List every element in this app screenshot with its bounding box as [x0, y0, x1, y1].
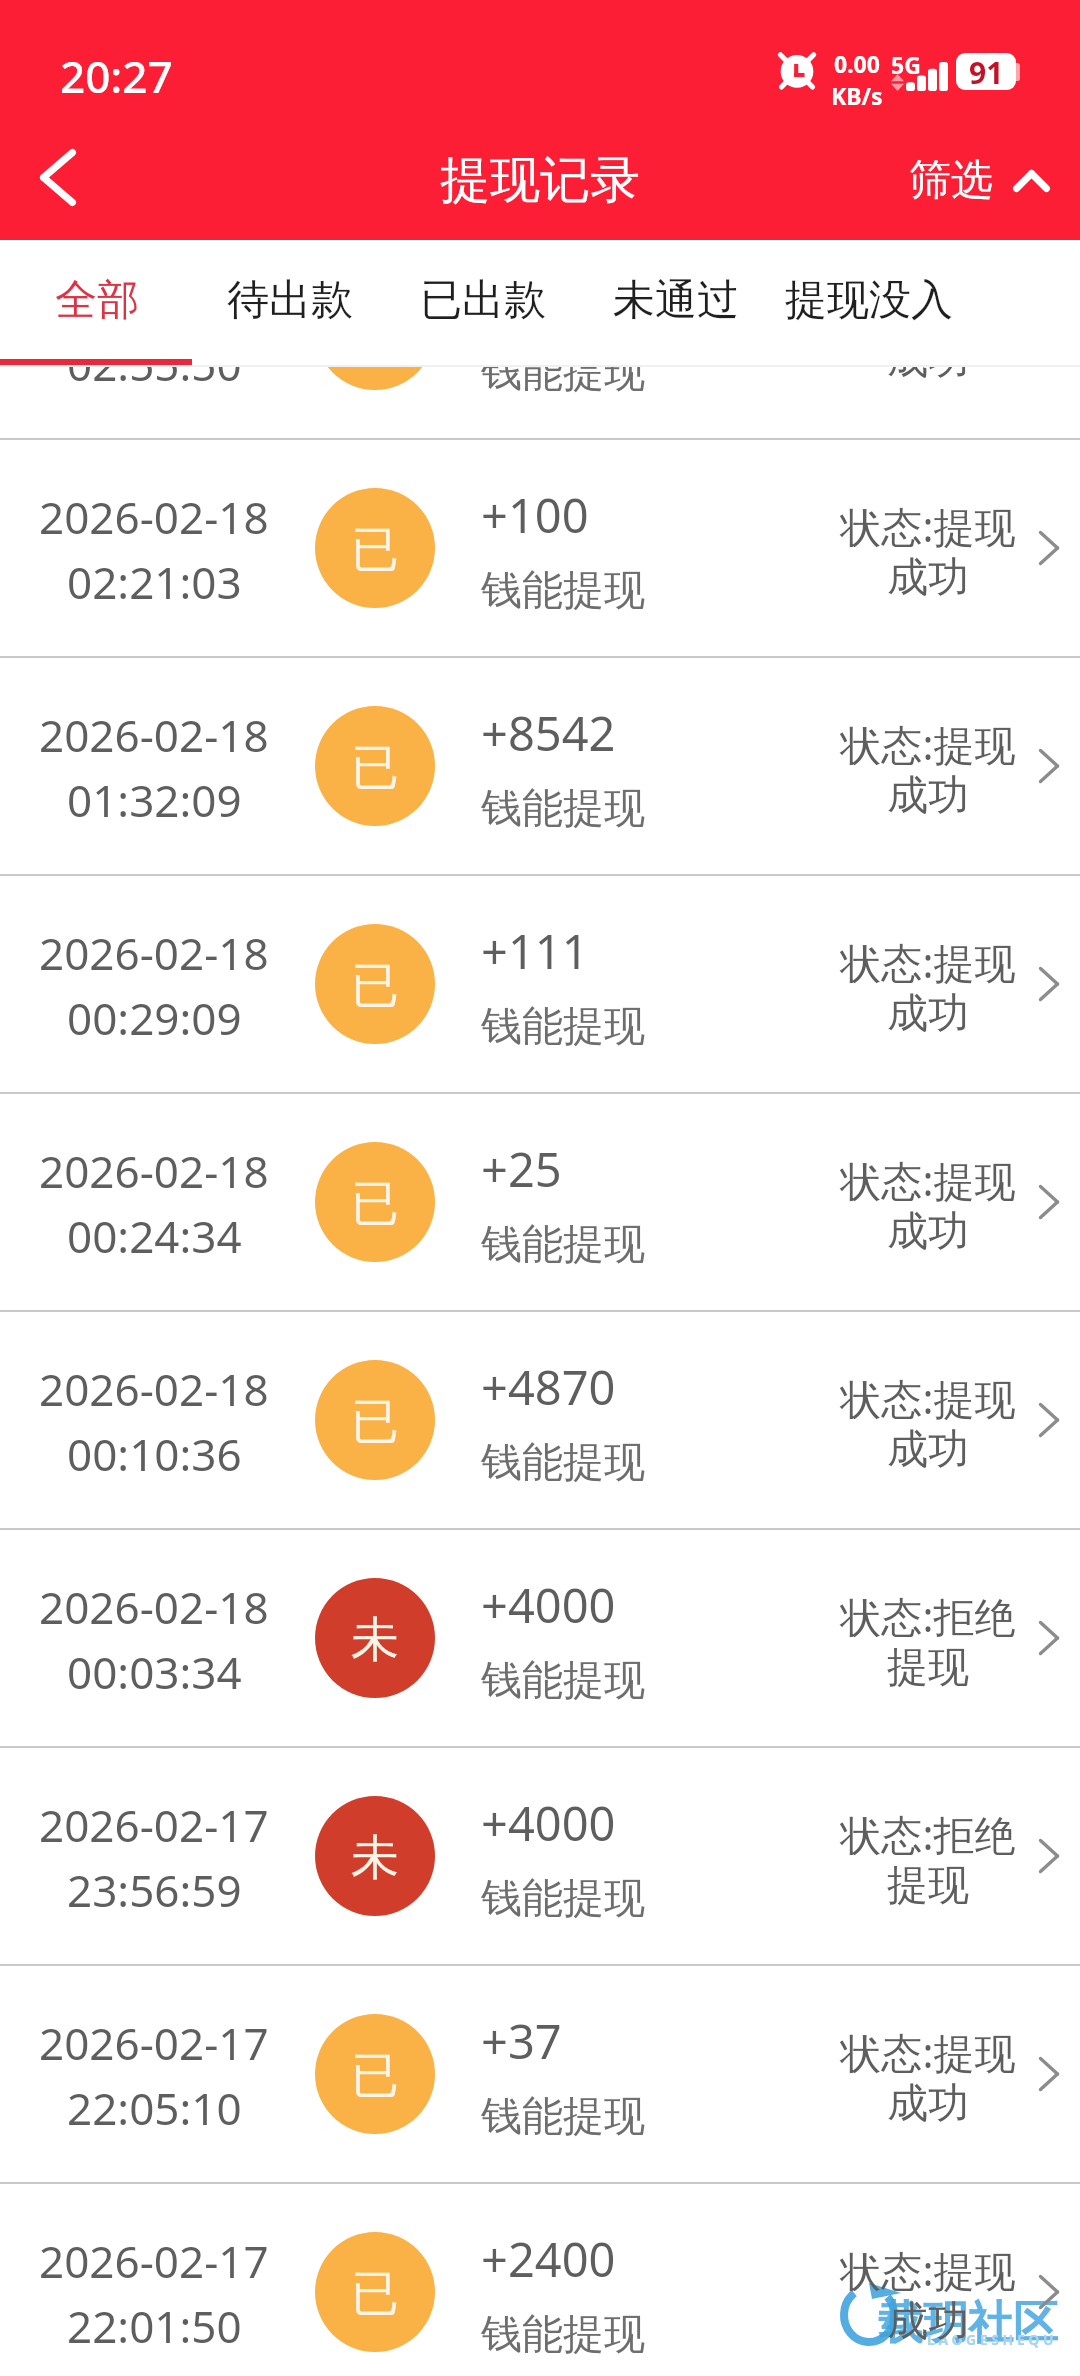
staticText: 钱能提现 — [481, 347, 645, 399]
button[interactable]: 提现没入 — [772, 240, 965, 367]
staticText: 状态:提现成功 — [840, 1370, 1016, 1475]
staticText: 0.00 — [834, 48, 880, 79]
staticText: 状态:提现成功 — [840, 498, 1016, 603]
staticText: 2026-02-17 — [39, 2013, 269, 2073]
staticText: 已 — [351, 520, 399, 580]
staticText: 钱能提现 — [481, 783, 645, 835]
staticText: +100 — [481, 483, 589, 547]
staticText: 未 — [351, 1610, 399, 1670]
staticText: 2026-02-17 — [39, 2231, 269, 2291]
staticText: +37 — [481, 2009, 562, 2073]
button[interactable]: Back — [0, 119, 116, 235]
staticText: 2026-02-18 — [39, 923, 269, 983]
staticText: 2026-02-18 — [39, 1577, 269, 1637]
staticText: 91 — [969, 53, 1004, 89]
staticText: 22:01:50 — [67, 2296, 242, 2356]
staticText: 提现记录 — [440, 149, 640, 212]
button[interactable]: 2026-02-18 — [0, 1312, 1080, 1528]
staticText: 已 — [351, 2264, 399, 2324]
staticText: 00:24:34 — [67, 1206, 242, 1266]
button[interactable]: 2026-02-18 — [0, 876, 1080, 1092]
staticText: 01:32:09 — [67, 770, 242, 830]
staticText: 2026-02-18 — [39, 269, 269, 329]
staticText: 钱能提现 — [481, 1219, 645, 1271]
button[interactable]: 2026-02-18 — [0, 1530, 1080, 1746]
button[interactable]: 2026-02-18 — [0, 440, 1080, 656]
staticText: 状态:提现成功 — [840, 716, 1016, 821]
button[interactable]: 全部 — [0, 240, 193, 367]
staticText: 00:29:09 — [67, 988, 242, 1048]
staticText: 02:21:03 — [67, 552, 242, 612]
staticText: 载玥社区 — [878, 2295, 1058, 2352]
staticText: KB/s — [831, 80, 883, 111]
staticText: 2026-02-18 — [39, 1141, 269, 1201]
staticText: +2000 — [481, 265, 616, 329]
button[interactable]: 2026-02-18 — [0, 658, 1080, 874]
staticText: 状态:提现成功 — [840, 280, 1016, 385]
staticText: +4000 — [481, 1573, 616, 1637]
staticText: 已出款 — [420, 274, 546, 327]
button[interactable]: 2026-02-18 — [0, 222, 1080, 438]
staticText: 状态:提现成功 — [840, 2242, 1016, 2347]
staticText: 状态:提现成功 — [840, 1152, 1016, 1257]
staticText: +4000 — [481, 1791, 616, 1855]
button[interactable]: 2026-02-17 — [0, 1966, 1080, 2182]
staticText: +2400 — [481, 2227, 616, 2291]
staticText: 钱能提现 — [481, 2309, 645, 2361]
staticText: 全部 — [55, 274, 139, 327]
button[interactable]: 2026-02-17 — [0, 1748, 1080, 1964]
staticText: 状态:提现成功 — [840, 934, 1016, 1039]
button[interactable]: 待出款 — [193, 240, 386, 367]
staticText: 钱能提现 — [481, 1001, 645, 1053]
staticText: 筛选 — [909, 154, 993, 207]
staticText: 02:55:50 — [67, 334, 242, 394]
staticText: 钱能提现 — [481, 565, 645, 617]
button[interactable]: 未通过 — [579, 240, 772, 367]
staticText: +4870 — [481, 1355, 616, 1419]
staticText: 20:27 — [60, 46, 173, 106]
staticText: 00:10:36 — [67, 1424, 242, 1484]
staticText: 2026-02-18 — [39, 487, 269, 547]
staticText: 钱能提现 — [481, 2091, 645, 2143]
staticText: 钱能提现 — [481, 1437, 645, 1489]
staticText: 5G — [891, 49, 921, 80]
staticText: +111 — [481, 919, 589, 983]
staticText: 提现没入 — [785, 274, 953, 327]
button[interactable]: 筛选 — [889, 134, 1080, 227]
staticText: 2026-02-17 — [39, 1795, 269, 1855]
staticText: 状态:拒绝提现 — [840, 1806, 1016, 1911]
staticText: 未通过 — [613, 274, 739, 327]
button[interactable]: 2026-02-18 — [0, 1094, 1080, 1310]
staticText: 已 — [351, 1392, 399, 1452]
staticText: 钱能提现 — [481, 1655, 645, 1707]
staticText: 00:03:34 — [67, 1642, 242, 1702]
staticText: LAOGESHEQU — [927, 2330, 1058, 2349]
staticText: 已 — [351, 956, 399, 1016]
staticText: 已 — [351, 738, 399, 798]
staticText: 23:56:59 — [67, 1860, 242, 1920]
staticText: 已 — [351, 2046, 399, 2106]
staticText: +8542 — [481, 701, 616, 765]
staticText: 2026-02-18 — [39, 705, 269, 765]
button[interactable]: 2026-02-17 — [0, 2184, 1080, 2376]
staticText: 状态:提现成功 — [840, 2024, 1016, 2129]
staticText: 未 — [351, 1828, 399, 1888]
staticText: 钱能提现 — [481, 1873, 645, 1925]
button[interactable]: 已出款 — [386, 240, 579, 367]
staticText: +25 — [481, 1137, 562, 1201]
staticText: 已 — [351, 1174, 399, 1234]
staticText: 22:05:10 — [67, 2078, 242, 2138]
staticText: 2026-02-18 — [39, 1359, 269, 1419]
staticText: 状态:拒绝提现 — [840, 1588, 1016, 1693]
staticText: 待出款 — [227, 274, 353, 327]
